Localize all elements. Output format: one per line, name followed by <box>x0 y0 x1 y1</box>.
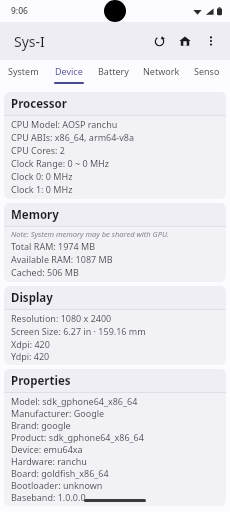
staticText: Display <box>11 290 53 306</box>
staticText: Resolution: 1080 x 2400 <box>11 312 112 324</box>
staticText: Clock 1: 0 MHz <box>11 183 73 195</box>
button[interactable]: Battery <box>98 60 129 88</box>
staticText: Clock 0: 0 MHz <box>11 170 73 182</box>
button[interactable]: Processor <box>4 92 226 199</box>
staticText: Clock Range: 0 ~ 0 MHz <box>11 157 110 169</box>
staticText: CPU ABIs: x86_64, arm64-v8a <box>11 131 135 143</box>
staticText: Cached: 506 MB <box>11 266 79 278</box>
staticText: Network <box>143 65 180 77</box>
staticText: Product: sdk_gphone64_x86_64 <box>11 431 144 443</box>
button[interactable]: Home <box>172 28 198 54</box>
staticText: Properties <box>11 373 71 389</box>
staticText: Memory <box>11 207 59 223</box>
button[interactable]: Display <box>4 286 226 365</box>
staticText: Xdpi: 420 <box>11 338 50 350</box>
staticText: Note: System memory may be shared with G… <box>11 229 169 239</box>
button[interactable]: Network <box>143 60 180 88</box>
staticText: Hardware: ranchu <box>11 455 87 467</box>
staticText: Brand: google <box>11 419 71 431</box>
staticText: Available RAM: 1087 MB <box>11 253 113 265</box>
button[interactable]: Properties <box>4 369 226 506</box>
staticText: Screen Size: 6.27 in · 159.16 mm <box>11 325 146 337</box>
button[interactable]: Memory <box>4 203 226 282</box>
staticText: Total RAM: 1974 MB <box>11 240 95 252</box>
staticText: Board: goldfish_x86_64 <box>11 467 109 479</box>
staticText: Bootloader: unknown <box>11 479 103 491</box>
staticText: Ydpi: 420 <box>11 350 50 362</box>
button[interactable]: System <box>8 60 39 88</box>
button[interactable]: More options <box>198 28 224 54</box>
staticText: Sys-I <box>14 32 45 51</box>
staticText: 9:06 <box>11 5 28 17</box>
staticText: CPU Cores: 2 <box>11 144 66 156</box>
staticText: Processor <box>11 96 67 112</box>
staticText: Device: emu64xa <box>11 443 83 455</box>
staticText: Sensors <box>194 65 223 77</box>
staticText: Baseband: 1.0.0.0 <box>11 491 86 503</box>
staticText: CPU Model: AOSP ranchu <box>11 118 118 130</box>
staticText: Device <box>55 65 83 77</box>
button[interactable]: Refresh <box>146 28 172 54</box>
button[interactable]: Device <box>54 60 84 88</box>
staticText: Manufacturer: Google <box>11 407 105 419</box>
staticText: Battery <box>98 65 129 77</box>
staticText: Model: sdk_gphone64_x86_64 <box>11 395 138 407</box>
staticText: System <box>8 65 39 77</box>
button[interactable]: Sensors <box>194 60 223 88</box>
